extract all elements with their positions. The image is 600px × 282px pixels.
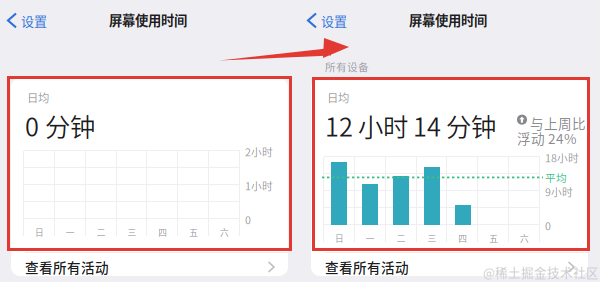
- staticText: 查看所有活动: [25, 257, 109, 277]
- staticText: 二: [397, 232, 406, 244]
- button[interactable]: 设置: [300, 6, 355, 35]
- staticText: 查看所有活动: [325, 257, 409, 277]
- staticText: 1小时: [245, 178, 273, 193]
- staticText: 0: [245, 212, 251, 227]
- staticText: 四: [158, 226, 167, 238]
- staticText: 二: [97, 226, 106, 238]
- staticText: 2小时: [245, 144, 273, 159]
- staticText: 与上周比: [530, 113, 586, 133]
- staticText: 0: [545, 218, 551, 233]
- staticText: 五: [189, 226, 198, 238]
- staticText: 日均: [27, 89, 49, 105]
- button[interactable]: 查看所有活动: [11, 252, 288, 282]
- staticText: 屏幕使用时间: [109, 10, 187, 29]
- staticText: 12 小时 14 分钟: [325, 107, 496, 144]
- staticText: 所有设备: [325, 59, 369, 74]
- staticText: 18小时: [545, 150, 579, 165]
- staticText: 三: [127, 226, 136, 238]
- staticText: 平均: [545, 169, 567, 185]
- staticText: 一: [366, 232, 375, 244]
- staticText: 日: [335, 232, 344, 244]
- staticText: 四: [458, 232, 467, 244]
- staticText: 设置: [321, 11, 347, 30]
- staticText: 六: [220, 226, 229, 238]
- staticText: 屏幕使用时间: [409, 10, 487, 29]
- staticText: 六: [520, 232, 529, 244]
- staticText: 日均: [327, 89, 349, 105]
- staticText: 9小时: [545, 184, 573, 199]
- button[interactable]: 设置: [0, 6, 55, 35]
- staticText: 浮动 24%: [517, 128, 577, 148]
- staticText: 一: [66, 226, 75, 238]
- staticText: 日: [35, 226, 44, 238]
- staticText: @稀土掘金技术社区: [483, 263, 599, 281]
- staticText: 0 分钟: [25, 107, 95, 144]
- staticText: 设置: [21, 11, 47, 30]
- staticText: 五: [489, 232, 498, 244]
- button[interactable]: 查看所有活动: [311, 252, 588, 282]
- staticText: 三: [427, 232, 436, 244]
